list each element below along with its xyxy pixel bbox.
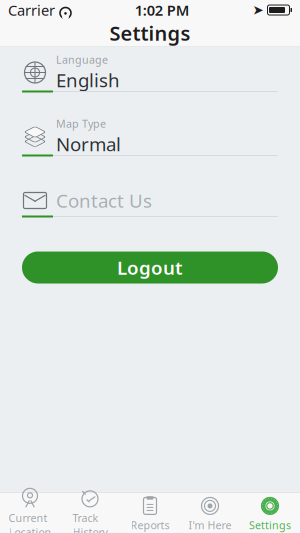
staticText: I'm Here: [188, 518, 231, 532]
staticText: Reports: [130, 518, 169, 532]
button[interactable]: Settings: [240, 491, 300, 533]
staticText: English: [56, 68, 120, 92]
button[interactable]: Map Type: [22, 118, 278, 156]
button[interactable]: Track History: [60, 484, 120, 533]
staticText: Logout: [117, 255, 183, 280]
button[interactable]: Reports: [120, 491, 180, 533]
staticText: Settings: [249, 518, 291, 532]
staticText: ➤: [252, 2, 263, 17]
staticText: Settings: [109, 20, 190, 46]
button[interactable]: Current Location: [0, 484, 60, 533]
staticText: Track History: [72, 511, 107, 533]
staticText: Carrier: [8, 0, 55, 20]
staticText: 1:02 PM: [135, 0, 190, 20]
staticText: Normal: [56, 132, 121, 156]
staticText: Contact Us: [56, 188, 152, 213]
staticText: Language: [56, 52, 108, 67]
button[interactable]: I'm Here: [180, 491, 240, 533]
staticText: Map Type: [56, 116, 106, 131]
button[interactable]: Language: [22, 54, 278, 92]
staticText: Current Location: [8, 511, 51, 533]
button[interactable]: Logout: [22, 251, 278, 283]
button[interactable]: Contact Us: [22, 185, 278, 217]
